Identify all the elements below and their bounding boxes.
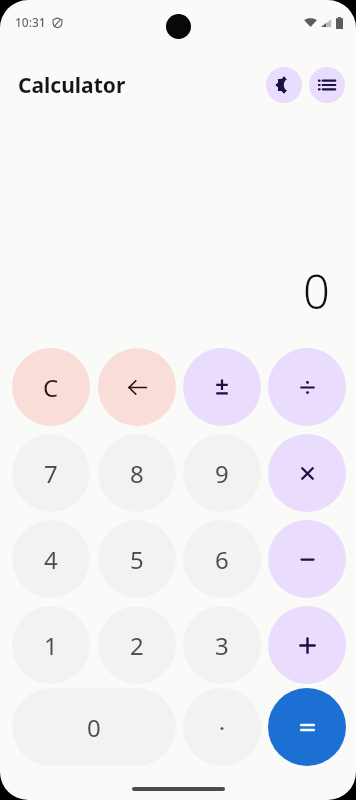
- button[interactable]: Equals: [268, 688, 346, 766]
- staticText: 9: [215, 457, 229, 490]
- button[interactable]: 6: [183, 520, 261, 598]
- button[interactable]: Plus: [268, 606, 346, 684]
- staticText: 0: [303, 259, 330, 323]
- button[interactable]: Minus: [268, 520, 346, 598]
- staticText: 7: [44, 457, 58, 490]
- button[interactable]: Decimal point: [183, 688, 261, 766]
- button[interactable]: 7: [12, 434, 90, 512]
- button[interactable]: Divide: [268, 348, 346, 426]
- button[interactable]: 3: [183, 606, 261, 684]
- button[interactable]: 9: [183, 434, 261, 512]
- button[interactable]: 0: [12, 688, 176, 766]
- button[interactable]: Multiply: [268, 434, 346, 512]
- button[interactable]: Plus minus: [183, 348, 261, 426]
- staticText: 1: [44, 629, 58, 662]
- button[interactable]: Backspace: [98, 348, 176, 426]
- staticText: 8: [130, 457, 144, 490]
- button[interactable]: 2: [98, 606, 176, 684]
- staticText: 2: [130, 629, 144, 662]
- button[interactable]: 1: [12, 606, 90, 684]
- button[interactable]: 4: [12, 520, 90, 598]
- button[interactable]: 8: [98, 434, 176, 512]
- button[interactable]: 5: [98, 520, 176, 598]
- staticText: 10:31: [15, 14, 46, 30]
- staticText: C: [43, 371, 59, 404]
- staticText: Calculator: [18, 71, 126, 100]
- staticText: 5: [130, 543, 144, 576]
- button[interactable]: History: [309, 67, 345, 103]
- staticText: 6: [215, 543, 229, 576]
- staticText: 0: [87, 711, 101, 744]
- button[interactable]: Toggle dark theme: [266, 67, 302, 103]
- staticText: 3: [215, 629, 229, 662]
- button[interactable]: C: [12, 348, 90, 426]
- staticText: 4: [44, 543, 58, 576]
